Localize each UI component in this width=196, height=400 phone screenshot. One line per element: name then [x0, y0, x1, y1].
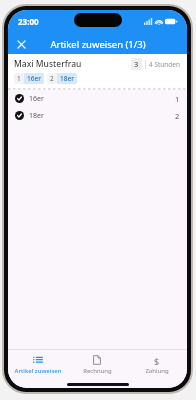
button[interactable]: 16er — [8, 90, 187, 107]
staticText: Artikel zuweisen — [14, 367, 62, 375]
button[interactable]: 2 — [47, 73, 77, 84]
button[interactable]: Rechnung — [67, 350, 127, 380]
staticText: 18er — [60, 74, 74, 83]
button[interactable]: Schließen — [12, 35, 30, 53]
staticText: Maxi Musterfrau — [14, 58, 82, 70]
staticText: 3 — [134, 59, 139, 69]
staticText: Rechnung — [83, 367, 112, 375]
staticText: Artikel zuweisen (1/3) — [50, 38, 146, 51]
staticText: 18er — [29, 111, 44, 121]
button[interactable]: 18er — [8, 107, 187, 124]
staticText: 4 Stunden — [149, 60, 181, 69]
staticText: Zahlung — [145, 367, 169, 375]
staticText: 2 — [50, 74, 54, 83]
button[interactable]: Maxi Musterfrau — [8, 54, 187, 88]
staticText: 16er — [29, 94, 44, 104]
staticText: $ — [154, 355, 160, 365]
staticText: 23:00 — [18, 16, 39, 27]
button[interactable]: $ — [127, 350, 187, 380]
button[interactable]: Artikel zuweisen — [8, 350, 67, 380]
staticText: 1 — [17, 74, 21, 83]
staticText: 2 — [175, 111, 180, 121]
button[interactable]: 1 — [14, 73, 44, 84]
staticText: 16er — [27, 74, 41, 83]
staticText: 1 — [175, 94, 180, 104]
